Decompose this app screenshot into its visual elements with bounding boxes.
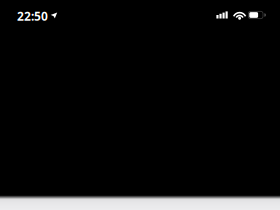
button[interactable]: Show controls <box>0 0 280 210</box>
staticText: 22:50 <box>17 8 48 24</box>
